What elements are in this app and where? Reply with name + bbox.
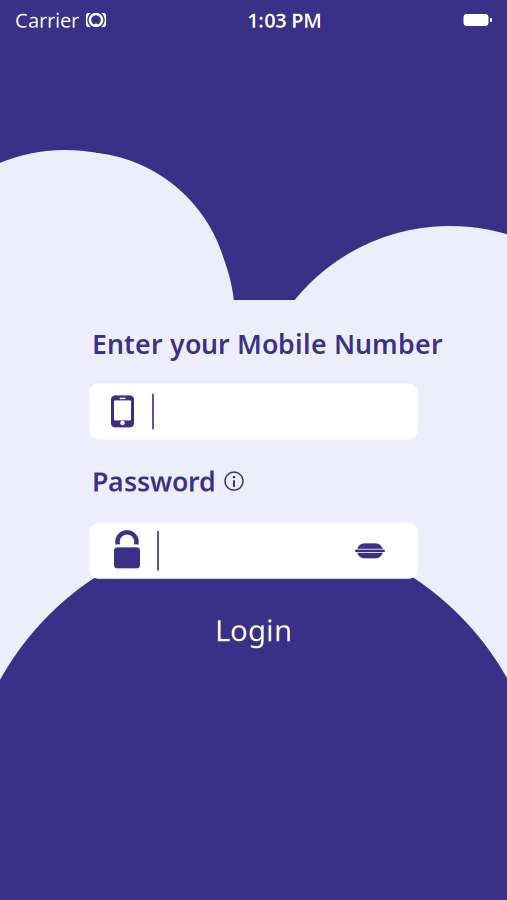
staticText: Enter your Mobile Number bbox=[92, 326, 443, 361]
button[interactable]: Login bbox=[182, 608, 324, 652]
staticText: Carrier bbox=[15, 7, 79, 33]
staticText: Login bbox=[215, 610, 292, 649]
button[interactable]: Show password bbox=[350, 531, 390, 571]
staticText: 1:03 PM bbox=[247, 7, 322, 33]
staticText: Password bbox=[92, 463, 216, 499]
